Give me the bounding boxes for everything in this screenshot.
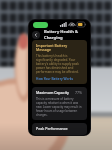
staticText: Important Battery Message [36, 43, 83, 52]
button[interactable]: Peak Performance Capability [32, 123, 87, 135]
staticText: Maximum Capacity [36, 90, 69, 95]
staticText: This battery's health is significantly d… [36, 54, 83, 74]
staticText: Battery Health & Charging [44, 29, 87, 40]
button[interactable]: Maximum Capacity [32, 87, 87, 120]
button[interactable]: Back [32, 31, 40, 39]
staticText: 77% [75, 90, 83, 95]
staticText: Peak Performance Capability [36, 126, 83, 132]
button[interactable]: How Your Battery Works [36, 77, 74, 81]
staticText: This is a measure of battery capacity re… [36, 97, 83, 117]
button[interactable]: Important Battery Message [32, 40, 87, 84]
